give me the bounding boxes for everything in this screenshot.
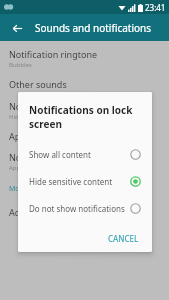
button[interactable]: Back (8, 19, 26, 37)
staticText: Do not show notifications (29, 203, 130, 214)
button[interactable]: Adapt sound (0, 206, 169, 218)
button[interactable]: Back (0, 14, 169, 41)
staticText: Adapt sound (9, 206, 63, 218)
button[interactable]: More settings (0, 184, 169, 194)
staticText: More settings (9, 184, 55, 194)
staticText: Applications cannot read notifications. (9, 164, 117, 172)
button[interactable]: Notification access (0, 151, 169, 172)
staticText: Notifications on lock screen (29, 103, 144, 131)
staticText: Other sounds (9, 78, 67, 90)
staticText: Sounds and notifications (35, 21, 152, 35)
button[interactable]: Other sounds (0, 78, 169, 90)
staticText: Hide sensitive content (29, 176, 130, 187)
button[interactable]: Notifications on lock screen (0, 100, 169, 121)
staticText: Notification access (9, 151, 88, 163)
button[interactable]: CANCEL (104, 230, 143, 247)
button[interactable]: Hide sensitive content (18, 168, 152, 195)
staticText: 23:41 (145, 2, 166, 13)
staticText: Bubbles (9, 61, 32, 69)
staticText: Notifications on lock screen (9, 100, 126, 112)
button[interactable]: Show all content (18, 141, 152, 168)
staticText: Hide sensitive content (9, 113, 72, 121)
button[interactable]: Notification ringtone (0, 48, 169, 69)
button[interactable]: Do not show notifications (18, 195, 152, 222)
staticText: Notification ringtone (9, 48, 98, 60)
button[interactable]: App notifications (0, 130, 169, 142)
staticText: Show all content (29, 149, 130, 160)
staticText: CANCEL (108, 233, 139, 244)
staticText: App notifications (9, 130, 81, 142)
